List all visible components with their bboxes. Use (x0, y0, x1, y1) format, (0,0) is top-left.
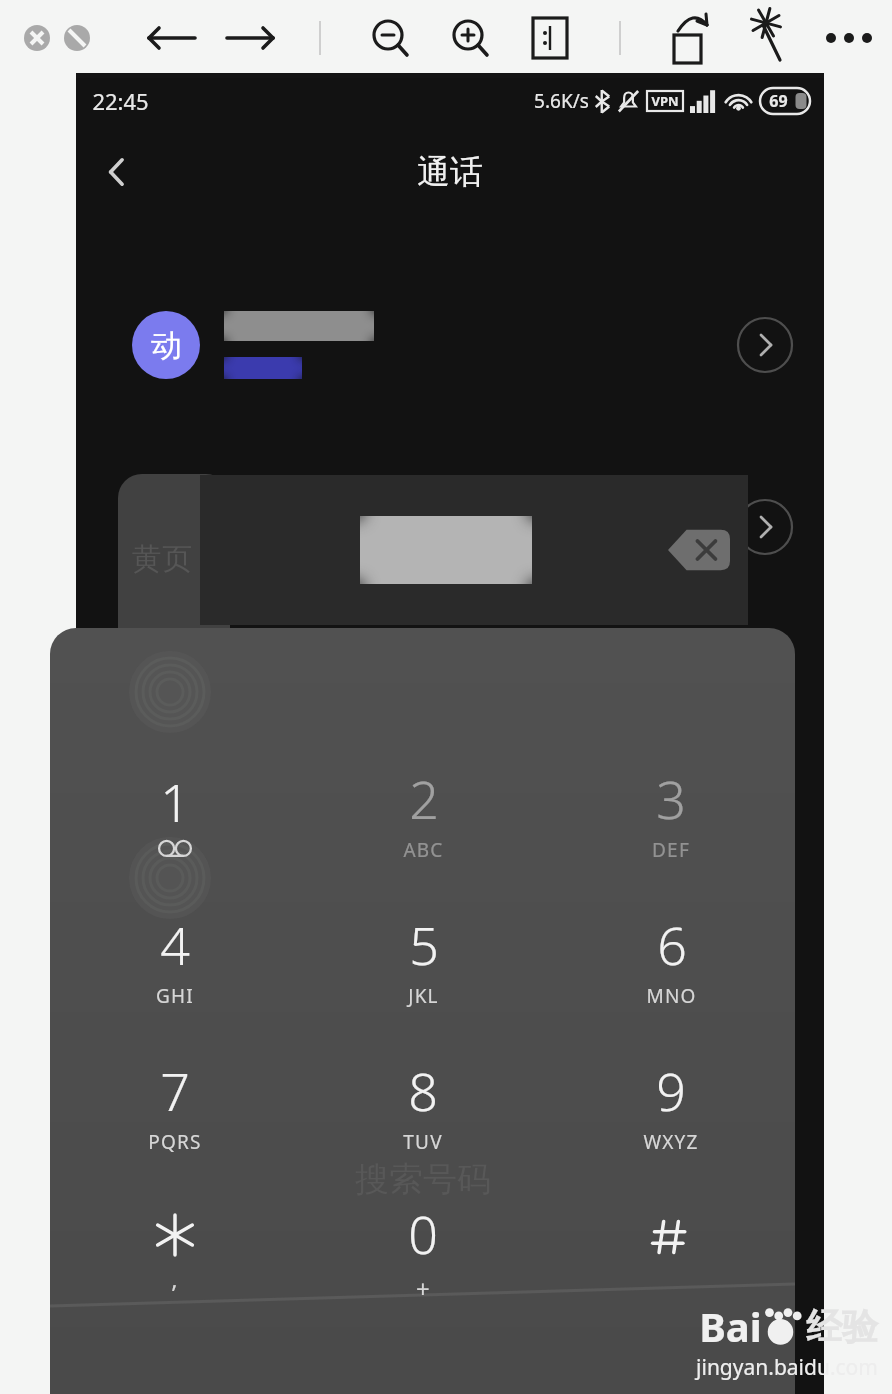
staticText: 经验 (806, 1304, 878, 1349)
staticText: + (416, 1272, 431, 1305)
button[interactable]: 动 (76, 254, 824, 436)
staticText: 黄页 (132, 540, 192, 578)
button[interactable]: Back (88, 143, 146, 201)
button[interactable]: 询 (76, 436, 824, 618)
button[interactable]: Details (736, 498, 794, 556)
staticText: DEF (652, 837, 690, 863)
staticText: 9 (656, 1055, 686, 1126)
staticText: 69 (769, 90, 788, 112)
button[interactable]: 2 (299, 740, 547, 886)
staticText: jingyan.baidu.com (696, 1353, 878, 1382)
staticText: 2 (409, 763, 439, 834)
button[interactable]: Details (736, 316, 794, 374)
staticText: Bai (699, 1299, 762, 1353)
staticText: 4 (160, 909, 190, 980)
staticText: PQRS (148, 1129, 202, 1155)
staticText: 搜索号码 (355, 1158, 491, 1201)
staticText: 1 (160, 766, 190, 837)
button[interactable]: 0 (299, 1178, 547, 1324)
staticText: 动 (151, 326, 182, 365)
staticText: 通话 (417, 151, 483, 193)
button[interactable]: 6 (547, 886, 795, 1032)
button[interactable]: 8 (299, 1032, 547, 1178)
button[interactable]: 5 (299, 886, 547, 1032)
staticText: , (171, 1262, 179, 1295)
staticText: TUV (403, 1129, 443, 1155)
staticText: 22:45 (92, 86, 149, 116)
staticText: VPN (651, 92, 679, 110)
staticText: 6 (657, 909, 687, 980)
staticText: 5 (409, 909, 439, 980)
button[interactable]: , (50, 1178, 299, 1324)
button[interactable]: 7 (50, 1032, 299, 1178)
staticText: 8 (408, 1055, 438, 1126)
button[interactable]: Backspace (668, 527, 730, 573)
staticText: 3 (656, 763, 686, 834)
button[interactable]: 9 (547, 1032, 795, 1178)
staticText: JKL (408, 983, 439, 1009)
button[interactable]: 1 (50, 740, 299, 886)
button[interactable]: Keypad (547, 1324, 795, 1394)
button[interactable]: 4 (50, 886, 299, 1032)
staticText: 0 (408, 1198, 438, 1269)
staticText: ABC (403, 837, 444, 863)
staticText: 7 (160, 1055, 190, 1126)
staticText: GHI (156, 983, 194, 1009)
staticText: MNO (646, 983, 697, 1009)
button[interactable] (547, 1178, 795, 1324)
staticText: 5.6K/s (534, 88, 589, 114)
button[interactable]: 3 (547, 740, 795, 886)
staticText: WXYZ (643, 1129, 699, 1155)
